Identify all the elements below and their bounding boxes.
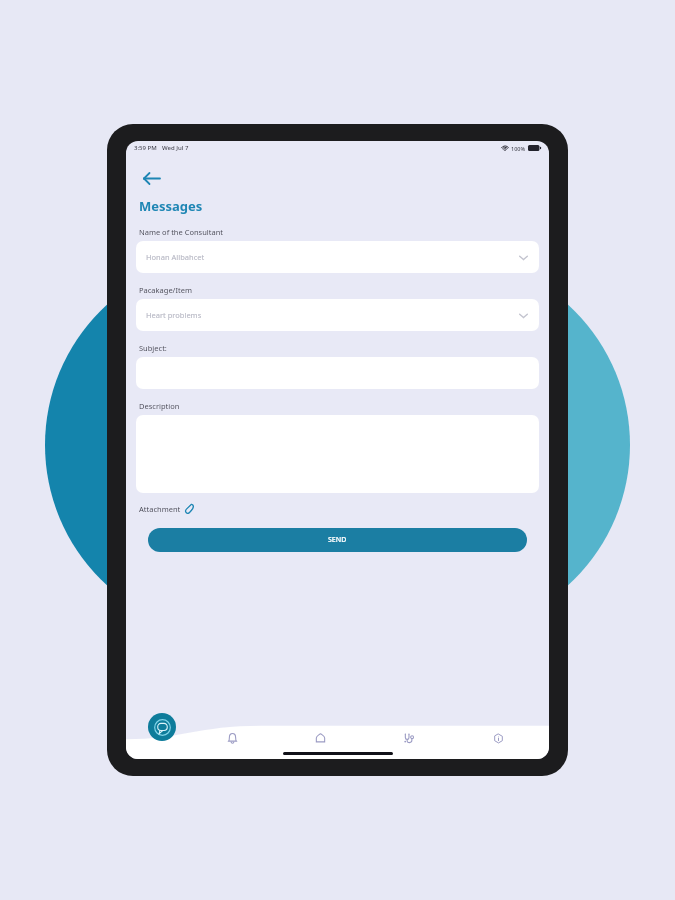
button[interactable]: Honan Allbahcet [136, 241, 539, 273]
staticText: Name of the Consultant [139, 227, 224, 237]
button[interactable]: Heart problems [136, 299, 539, 331]
button[interactable]: Home [276, 721, 365, 755]
staticText: Heart problems [146, 310, 518, 320]
button[interactable]: Back [136, 163, 166, 193]
staticText: Subject: [139, 343, 167, 353]
staticText: Pacakage/Item [139, 285, 192, 295]
staticText: 3:59 PM [134, 144, 157, 152]
staticText: SEND [328, 535, 347, 545]
staticText: Messages [139, 197, 203, 215]
staticText: 100% [511, 145, 526, 152]
staticText: Description [139, 401, 180, 411]
button[interactable]: Messages [148, 713, 176, 741]
staticText: Honan Allbahcet [146, 252, 518, 262]
button[interactable]: SEND [148, 528, 527, 552]
button[interactable]: Notifications [188, 721, 276, 755]
button[interactable]: Consultations [365, 721, 454, 755]
button[interactable]: Attachment [139, 503, 195, 514]
staticText: Attachment [139, 504, 181, 514]
button[interactable]: Info [454, 721, 543, 755]
staticText: Wed Jul 7 [162, 144, 189, 152]
